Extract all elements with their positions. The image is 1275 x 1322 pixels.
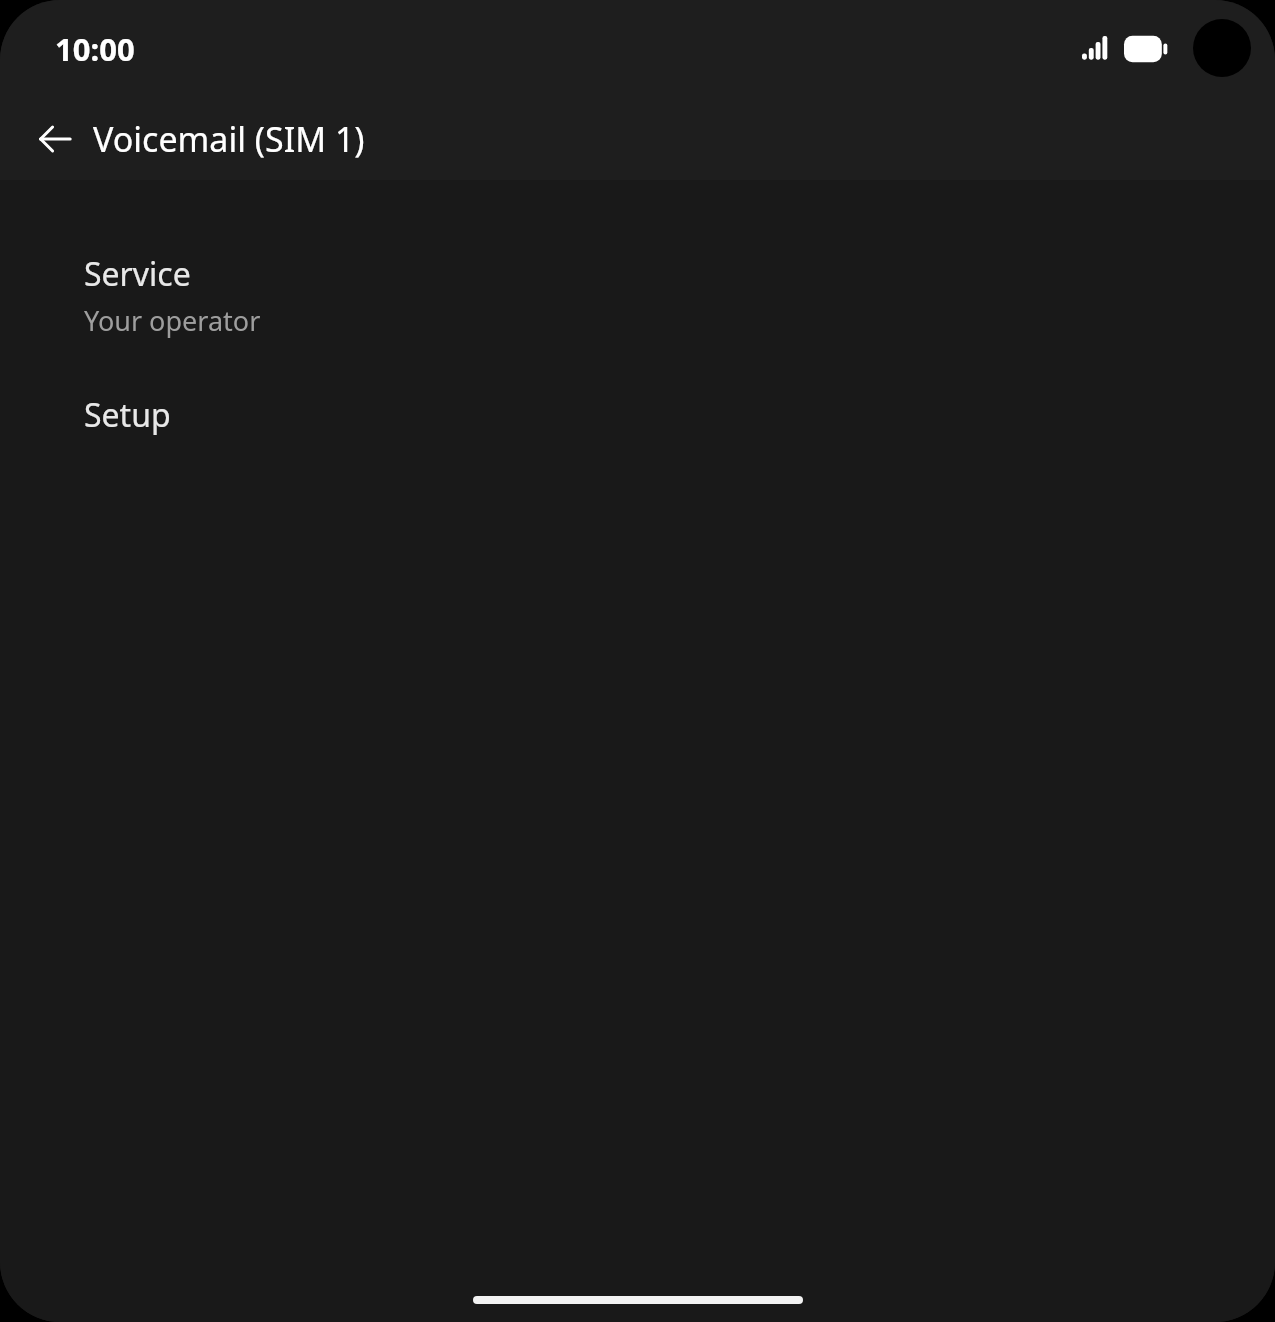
button[interactable]: Service	[0, 248, 1275, 349]
button[interactable]: Back	[25, 109, 85, 169]
button[interactable]: Setup	[0, 387, 1275, 449]
staticText: Your operator	[84, 302, 261, 339]
staticText: Setup	[84, 393, 171, 437]
staticText: Service	[84, 252, 191, 296]
staticText: Voicemail (SIM 1)	[93, 116, 365, 162]
staticText: 10:00	[55, 28, 135, 70]
